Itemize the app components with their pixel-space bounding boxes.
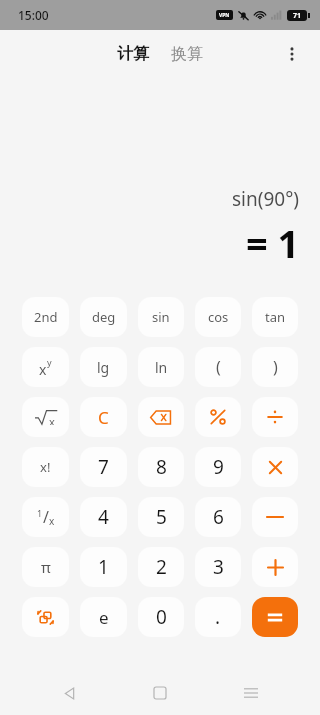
staticText: 5 <box>156 504 167 530</box>
button[interactable]: Percent <box>195 397 241 437</box>
button[interactable]: x! <box>22 447 69 487</box>
staticText: ( <box>216 356 221 378</box>
staticText: x <box>49 514 55 528</box>
staticText: x! <box>40 458 51 476</box>
staticText: π <box>41 557 51 577</box>
button[interactable]: Home <box>138 671 182 715</box>
staticText: 6 <box>213 504 224 530</box>
button[interactable]: Divide <box>252 397 298 437</box>
button[interactable]: Equals <box>252 597 298 637</box>
staticText: ) <box>273 356 278 378</box>
button[interactable]: 8 <box>138 447 184 487</box>
button[interactable]: 3 <box>195 547 241 587</box>
staticText: . <box>215 604 221 630</box>
staticText: 换算 <box>171 44 203 64</box>
button[interactable]: e <box>80 597 127 637</box>
staticText: C <box>98 406 109 429</box>
staticText: 9 <box>213 454 224 480</box>
button[interactable]: Multiply <box>252 447 298 487</box>
staticText: deg <box>92 308 116 326</box>
button[interactable]: x to the power of y <box>22 347 69 387</box>
button[interactable]: Delete <box>138 397 184 437</box>
staticText: cos <box>208 308 229 326</box>
staticText: 4 <box>98 504 109 530</box>
button[interactable]: 2 <box>138 547 184 587</box>
staticText: = 1 <box>246 217 300 269</box>
button[interactable]: Unit convert <box>22 597 69 637</box>
button[interactable]: π <box>22 547 69 587</box>
button[interactable]: one over x <box>22 497 69 537</box>
staticText: 1 <box>98 554 109 580</box>
button[interactable]: Minus <box>252 497 298 537</box>
button[interactable]: 换算 <box>165 39 209 69</box>
staticText: tan <box>265 308 286 326</box>
staticText: sin <box>152 308 170 326</box>
button[interactable]: . <box>195 597 241 637</box>
button[interactable]: 4 <box>80 497 127 537</box>
staticText: 计算 <box>117 44 149 64</box>
button[interactable]: 计算 <box>111 39 155 69</box>
staticText: 15:00 <box>18 7 49 23</box>
button[interactable]: sin <box>138 297 184 337</box>
button[interactable]: 9 <box>195 447 241 487</box>
button[interactable]: ) <box>252 347 298 387</box>
button[interactable]: 1 <box>80 547 127 587</box>
button[interactable]: 6 <box>195 497 241 537</box>
staticText: 7 <box>98 454 109 480</box>
staticText: x <box>39 360 47 379</box>
button[interactable]: Back <box>47 671 91 715</box>
staticText: y <box>47 356 52 368</box>
button[interactable]: 5 <box>138 497 184 537</box>
button[interactable]: Square root <box>22 397 69 437</box>
staticText: 8 <box>156 454 167 480</box>
staticText: lg <box>97 358 110 377</box>
button[interactable]: More options <box>272 34 312 74</box>
staticText: e <box>99 606 109 629</box>
staticText: 2 <box>156 554 167 580</box>
button[interactable]: Recents <box>229 671 273 715</box>
staticText: 1 <box>37 507 43 519</box>
staticText: 71 <box>293 11 302 21</box>
button[interactable]: cos <box>195 297 241 337</box>
staticText: x <box>49 414 55 425</box>
staticText: / <box>43 506 49 528</box>
button[interactable]: lg <box>80 347 127 387</box>
staticText: 2nd <box>34 308 58 326</box>
staticText: sin(90°) <box>232 186 300 212</box>
button[interactable]: C <box>80 397 127 437</box>
button[interactable]: 0 <box>138 597 184 637</box>
button[interactable]: 7 <box>80 447 127 487</box>
button[interactable]: ( <box>195 347 241 387</box>
button[interactable]: Plus <box>252 547 298 587</box>
button[interactable]: 2nd <box>22 297 69 337</box>
button[interactable]: tan <box>252 297 298 337</box>
staticText: 0 <box>156 604 167 630</box>
button[interactable]: ln <box>138 347 184 387</box>
staticText: VPN <box>219 12 230 19</box>
staticText: ln <box>155 358 168 377</box>
button[interactable]: deg <box>80 297 127 337</box>
staticText: 3 <box>213 554 224 580</box>
